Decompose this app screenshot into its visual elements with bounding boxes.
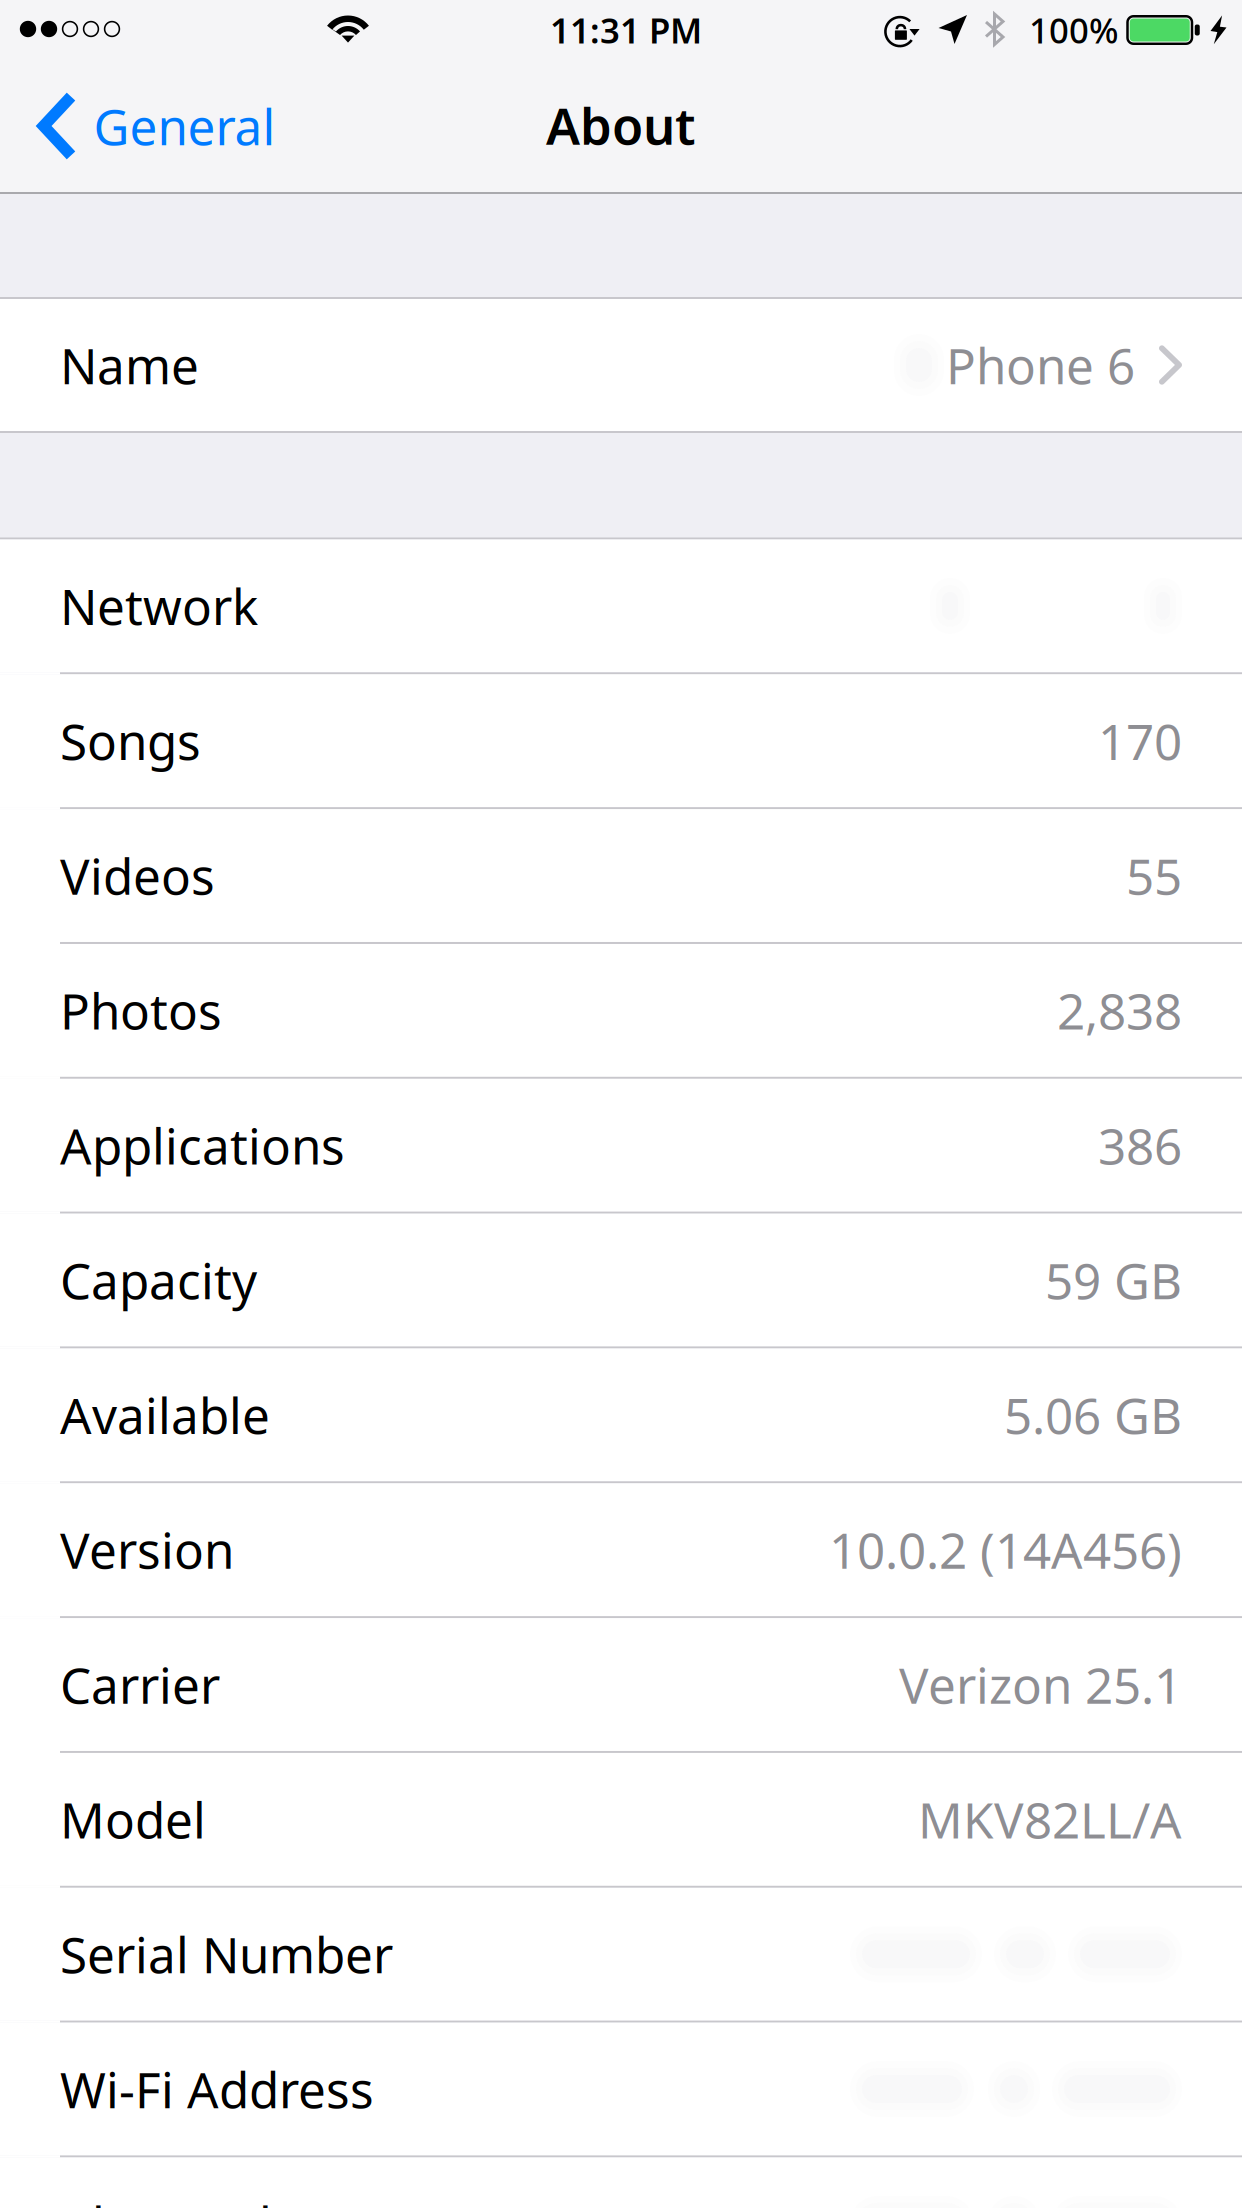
staticText: Wi-Fi Address xyxy=(60,2056,374,2122)
staticText: Songs xyxy=(60,708,201,773)
button[interactable]: Network xyxy=(0,539,1242,672)
staticText: Network xyxy=(60,573,258,639)
button[interactable]: Wi-Fi Address xyxy=(0,2023,1242,2155)
button[interactable]: Capacity xyxy=(0,1214,1242,1346)
staticText: Carrier xyxy=(60,1652,220,1717)
button[interactable]: Model xyxy=(0,1753,1242,1886)
button[interactable]: General xyxy=(0,60,300,192)
staticText: Videos xyxy=(60,843,215,908)
button[interactable]: Photos xyxy=(0,944,1242,1077)
staticText: Photos xyxy=(60,978,222,1043)
button[interactable]: Available xyxy=(0,1348,1242,1481)
button[interactable]: Name xyxy=(0,299,1242,431)
button[interactable]: Serial Number xyxy=(0,1888,1242,2021)
staticText: Verizon 25.1 xyxy=(899,1652,1182,1717)
staticText: General xyxy=(94,93,276,159)
staticText: Name xyxy=(60,332,199,398)
button[interactable]: Version xyxy=(0,1483,1242,1616)
staticText: 10.0.2 (14A456) xyxy=(829,1517,1182,1582)
staticText: 59 GB xyxy=(1045,1247,1182,1313)
staticText: Available xyxy=(60,1382,270,1448)
staticText: Serial Number xyxy=(60,1921,393,1987)
staticText: 170 xyxy=(1098,708,1182,773)
button[interactable]: Videos xyxy=(0,809,1242,942)
staticText: 100% xyxy=(1029,7,1119,53)
staticText: Bluetooth xyxy=(60,2191,289,2208)
staticText: Version xyxy=(60,1517,234,1582)
staticText: 55 xyxy=(1126,843,1182,908)
button[interactable]: Bluetooth xyxy=(0,2157,1242,2208)
button[interactable]: Applications xyxy=(0,1079,1242,1212)
staticText: About xyxy=(546,91,696,159)
button[interactable]: Songs xyxy=(0,674,1242,807)
staticText: 2,838 xyxy=(1057,978,1182,1043)
staticText: Capacity xyxy=(60,1247,257,1313)
staticText: Applications xyxy=(60,1112,345,1178)
staticText: Phone 6 xyxy=(946,332,1135,398)
staticText: 386 xyxy=(1098,1112,1182,1178)
staticText: 11:31 PM xyxy=(550,7,702,53)
staticText: MKV82LL/A xyxy=(918,1787,1182,1852)
staticText: 5.06 GB xyxy=(1004,1382,1182,1448)
button[interactable]: Carrier xyxy=(0,1618,1242,1751)
staticText: Model xyxy=(60,1787,206,1852)
